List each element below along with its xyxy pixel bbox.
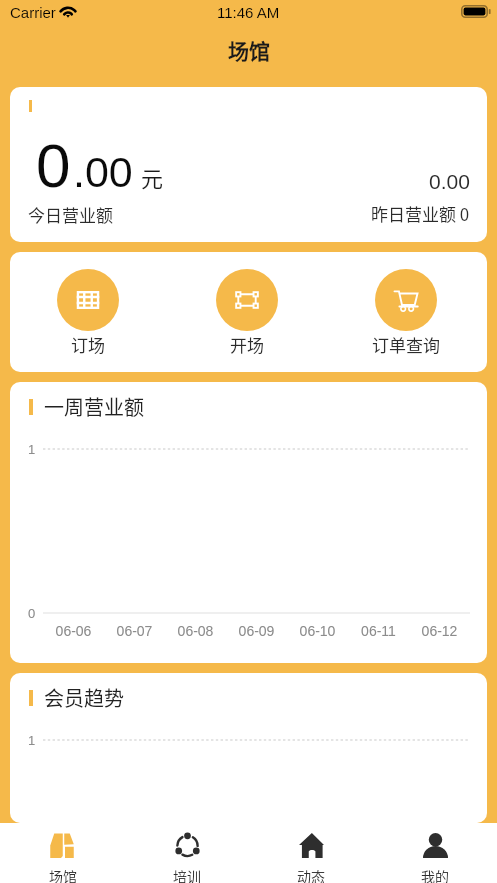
staticText: 订单查询: [372, 332, 440, 357]
staticText: Carrier: [10, 4, 56, 21]
button[interactable]: 0: [10, 87, 487, 242]
staticText: 今日营业额: [28, 202, 113, 227]
button[interactable]: 开场: [167, 252, 326, 357]
staticText: 06-12: [409, 623, 470, 639]
staticText: 会员趋势: [44, 683, 124, 712]
staticText: 06-08: [165, 623, 226, 639]
staticText: 1: [28, 442, 36, 457]
staticText: 订场: [71, 332, 105, 357]
button[interactable]: 场馆: [0, 823, 125, 883]
staticText: 元: [141, 161, 164, 193]
staticText: 0: [28, 606, 36, 621]
staticText: 0.00: [429, 170, 470, 193]
staticText: 场馆: [228, 35, 270, 65]
staticText: 一周营业额: [44, 392, 144, 421]
staticText: 场馆: [49, 866, 77, 883]
staticText: 我的: [421, 866, 449, 883]
staticText: 培训: [173, 866, 201, 883]
staticText: 动态: [297, 866, 325, 883]
staticText: 06-07: [104, 623, 165, 639]
staticText: 开场: [230, 332, 264, 357]
button[interactable]: 动态: [249, 823, 373, 883]
staticText: 06-09: [226, 623, 287, 639]
staticText: 11:46 AM: [217, 4, 280, 21]
button[interactable]: 培训: [125, 823, 249, 883]
button[interactable]: 订单查询: [326, 252, 485, 357]
button[interactable]: 我的: [373, 823, 497, 883]
staticText: 0: [36, 131, 71, 200]
staticText: 1: [28, 733, 36, 748]
staticText: 06-11: [348, 623, 409, 639]
staticText: 06-10: [287, 623, 348, 639]
staticText: .00: [73, 148, 133, 196]
staticText: 06-06: [43, 623, 104, 639]
staticText: 昨日营业额 0: [371, 201, 470, 226]
button[interactable]: 订场: [10, 252, 167, 357]
